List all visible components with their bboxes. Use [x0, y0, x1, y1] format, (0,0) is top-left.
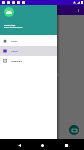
- button[interactable]: Home: [37, 140, 47, 150]
- staticText: Android Studio: [4, 24, 16, 26]
- button[interactable]: Back: [14, 140, 24, 150]
- staticText: android.studio@android.com: [4, 27, 23, 29]
- staticText: Home: [11, 40, 18, 43]
- button[interactable]: Recents: [61, 140, 71, 150]
- button[interactable]: More options: [76, 8, 81, 13]
- staticText: Slideshow: [11, 60, 22, 63]
- button[interactable]: Slideshow: [0, 56, 57, 66]
- button[interactable]: Gallery: [0, 46, 57, 56]
- staticText: Gallery: [11, 50, 19, 53]
- button[interactable]: Home: [0, 36, 57, 46]
- staticText: This is gallery Fragment: [25, 73, 59, 77]
- button[interactable]: Send email: [69, 125, 79, 135]
